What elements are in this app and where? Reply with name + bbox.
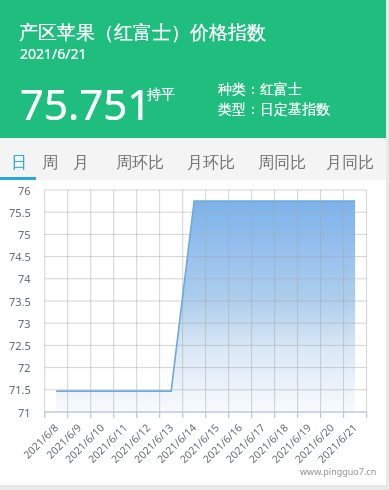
button[interactable]: 月	[62, 138, 99, 180]
button[interactable]: 周环比	[99, 138, 180, 180]
staticText: 种类：红富士	[218, 81, 302, 99]
staticText: 周同比	[258, 153, 306, 173]
staticText: 持平	[147, 86, 175, 104]
staticText: 产区苹果（红富士）价格指数	[19, 21, 266, 45]
staticText: 75.751	[20, 75, 152, 132]
button[interactable]: 周同比	[242, 138, 321, 180]
staticText: 周环比	[116, 153, 164, 173]
staticText: 日	[11, 153, 27, 173]
button[interactable]: 月环比	[180, 138, 242, 180]
staticText: 2021/6/21	[20, 44, 87, 63]
button[interactable]: 周	[37, 138, 62, 180]
staticText: 月同比	[326, 153, 374, 173]
staticText: 月	[73, 153, 89, 173]
staticText: 月环比	[187, 153, 235, 173]
button[interactable]: 日	[0, 138, 37, 180]
staticText: 类型：日定基指数	[218, 101, 330, 119]
button[interactable]: 月同比	[321, 138, 379, 180]
staticText: 周	[42, 153, 58, 173]
